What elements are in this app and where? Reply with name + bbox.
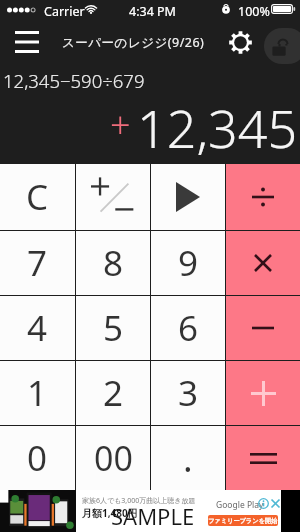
staticText: C [26,173,49,221]
button[interactable]: Subtract [226,296,300,360]
other: Equals [250,453,277,464]
button[interactable]: 0 [0,426,75,490]
button[interactable]: 3 [151,361,225,425]
staticText: 4 [27,304,48,352]
staticText: 7 [27,239,48,287]
staticText: 9 [178,239,199,287]
button[interactable]: 7 [0,231,75,295]
button[interactable]: Menu [7,20,47,64]
staticText: ファミリープランを開始 [208,517,278,525]
staticText: 6 [178,304,199,352]
other: Subtract [252,326,274,330]
other: Divide [252,188,274,206]
button[interactable]: Multiply [226,231,300,295]
button[interactable]: . [151,426,225,490]
button[interactable]: Plus minus [76,164,150,230]
staticText: . [183,434,193,483]
staticText: Google Play [216,499,264,511]
staticText: 100% [238,3,270,20]
button[interactable]: ファミリープランを開始 [208,515,278,526]
staticText: 4:34 PM [129,3,176,20]
button[interactable]: Equals [226,426,300,490]
staticText: 8 [103,239,124,287]
other: Plus minus [76,164,150,230]
button[interactable]: 8 [76,231,150,295]
other: Multiply [255,255,271,271]
button[interactable]: Settings [228,20,252,64]
button[interactable]: 00 [76,426,150,490]
other: Play [176,182,200,212]
staticText: + [110,100,131,149]
button[interactable]: Add [226,361,300,425]
staticText: 3 [178,369,199,417]
staticText: スーパーのレジジ(9/26) [62,34,205,51]
button[interactable]: C [0,164,75,230]
button[interactable]: Divide [226,164,300,230]
staticText: SAMPLE [111,501,195,531]
staticText: 12,345−590÷679 [3,68,145,93]
staticText: 00 [94,435,133,481]
button[interactable]: 5 [76,296,150,360]
button[interactable]: 6 [151,296,225,360]
button[interactable]: Play [151,164,225,230]
staticText: 1 [27,369,48,417]
button[interactable]: 2 [76,361,150,425]
staticText: 5 [103,304,124,352]
other: Add [251,381,276,406]
button[interactable]: 9 [151,231,225,295]
button[interactable]: Lock [264,28,300,64]
staticText: 0 [27,434,48,482]
staticText: 2 [103,369,124,417]
staticText: 12,345 [137,92,298,163]
button[interactable]: 4 [0,296,75,360]
staticText: 家族6人でも3,000万曲以上聴き放題 [82,496,196,506]
staticText: Carrier [44,3,85,20]
staticText: 月額1,480円 [82,506,138,520]
button[interactable]: 1 [0,361,75,425]
